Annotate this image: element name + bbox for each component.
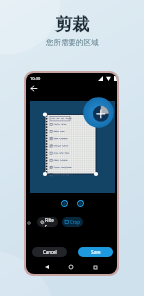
- button[interactable]: Back: [42, 262, 52, 272]
- button[interactable]: Recents: [90, 262, 100, 272]
- button[interactable]: Home: [66, 262, 76, 272]
- button[interactable]: Add: [93, 106, 109, 122]
- staticText: 10:30: [30, 76, 41, 81]
- staticText: Filter: [45, 217, 55, 227]
- button[interactable]: Crop: [62, 217, 83, 227]
- staticText: 剪裁: [55, 14, 89, 35]
- button[interactable]: Rotate right: [75, 198, 85, 208]
- button[interactable]: Cancel: [32, 247, 67, 257]
- button[interactable]: Back: [27, 82, 40, 95]
- button[interactable]: Save: [78, 247, 113, 257]
- staticText: Save: [91, 249, 101, 255]
- button[interactable]: Filter: [37, 217, 58, 227]
- button[interactable]: Rotate left: [59, 198, 69, 208]
- staticText: Cancel: [43, 249, 57, 255]
- staticText: 您所需要的区域: [46, 38, 99, 47]
- staticText: Crop: [70, 219, 80, 225]
